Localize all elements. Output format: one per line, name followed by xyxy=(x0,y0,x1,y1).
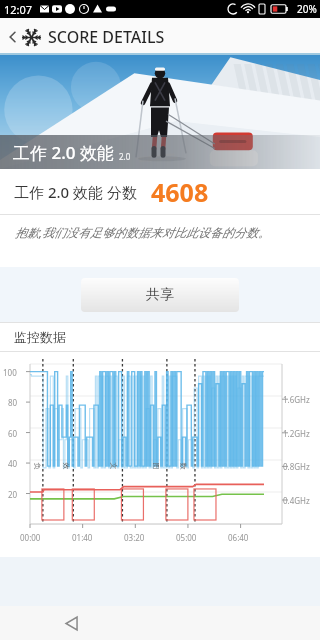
staticText: 00:00 xyxy=(20,532,41,543)
staticText: 0.8GHz xyxy=(283,461,310,472)
staticText: 数据处理 xyxy=(178,462,187,474)
staticText: 100 xyxy=(3,367,17,378)
staticText: 图片编辑 2.0 xyxy=(151,462,160,474)
button[interactable]: Back xyxy=(4,28,22,46)
staticText: 监控数据 xyxy=(14,329,66,345)
staticText: 共享 xyxy=(146,286,174,304)
staticText: 2.0 xyxy=(119,151,131,162)
staticText: 40 xyxy=(8,458,18,469)
staticText: 05:00 xyxy=(176,532,197,543)
staticText: 文档编写 2.0 xyxy=(108,462,117,474)
button[interactable]: 共享 xyxy=(81,278,239,312)
staticText: 效能测试 xyxy=(61,462,70,474)
staticText: 工作 2.0 效能 xyxy=(13,141,114,164)
staticText: 20% xyxy=(297,2,317,16)
staticText: 0.4GHz xyxy=(283,495,310,506)
staticText: 1.2GHz xyxy=(283,428,310,439)
staticText: 80 xyxy=(8,397,18,408)
staticText: 01:40 xyxy=(72,532,93,543)
staticText: 06:40 xyxy=(228,532,249,543)
button[interactable]: Back xyxy=(56,607,88,639)
staticText: SCORE DETAILS xyxy=(48,26,165,48)
staticText: 1.6GHz xyxy=(283,394,310,405)
staticText: 03:20 xyxy=(124,532,145,543)
staticText: 抱歉,我们没有足够的数据来对比此设备的分数。 xyxy=(15,224,271,240)
staticText: 负载测试 2.0 xyxy=(32,462,41,474)
staticText: 4608 xyxy=(151,175,209,209)
staticText: 20 xyxy=(8,489,18,500)
staticText: 工作 2.0 效能 分数 xyxy=(14,182,137,202)
staticText: 60 xyxy=(8,428,18,439)
staticText: 12:07 xyxy=(4,2,33,17)
